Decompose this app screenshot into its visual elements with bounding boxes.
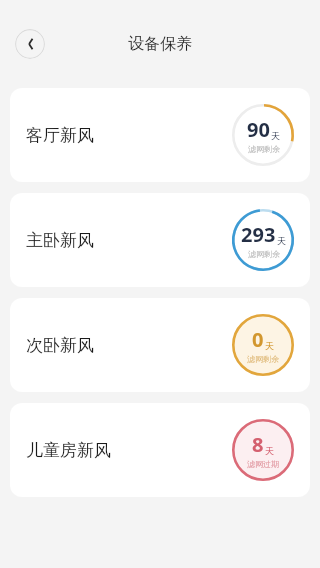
staticText: 滤网过期: [247, 459, 279, 469]
staticText: 滤网剩余: [248, 249, 280, 259]
staticText: 客厅新风: [26, 125, 94, 146]
staticText: 设备保养: [128, 34, 192, 54]
staticText: 8: [252, 431, 264, 458]
staticText: 天: [265, 340, 274, 351]
staticText: 滤网剩余: [248, 144, 280, 154]
staticText: 天: [277, 235, 286, 246]
staticText: 次卧新风: [26, 335, 94, 356]
button[interactable]: Back: [15, 29, 45, 59]
staticText: 儿童房新风: [26, 440, 111, 461]
button[interactable]: 主卧新风: [10, 193, 310, 287]
staticText: 293: [241, 221, 276, 248]
staticText: 滤网剩余: [247, 354, 279, 364]
button[interactable]: 次卧新风: [10, 298, 310, 392]
button[interactable]: 儿童房新风: [10, 403, 310, 497]
staticText: 天: [271, 130, 280, 141]
staticText: 0: [252, 326, 264, 353]
staticText: 天: [265, 445, 274, 456]
button[interactable]: 客厅新风: [10, 88, 310, 182]
staticText: 90: [247, 116, 270, 143]
staticText: 主卧新风: [26, 230, 94, 251]
